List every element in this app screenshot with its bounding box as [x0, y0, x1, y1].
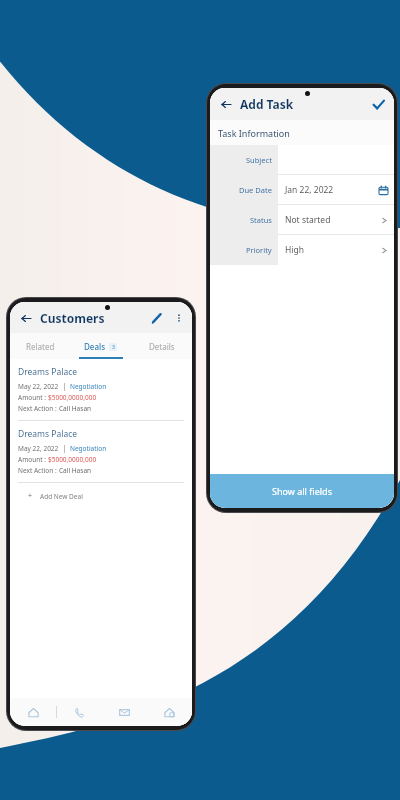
staticText: Dreams Palace [18, 366, 78, 378]
staticText: Show all fields [272, 485, 332, 497]
staticText: Next Action : [18, 466, 59, 475]
button[interactable]: Back [15, 307, 37, 329]
staticText: Negotiation [70, 382, 107, 391]
button[interactable]: Save [367, 93, 389, 115]
button[interactable]: Subject [210, 145, 394, 175]
button[interactable]: Home [10, 698, 56, 726]
staticText: Add Task [240, 96, 294, 112]
button[interactable]: Back [215, 93, 237, 115]
staticText: Priority [246, 245, 272, 255]
staticText: + [28, 491, 33, 501]
staticText: Status [250, 215, 272, 225]
button[interactable]: Dreams Palace [10, 421, 192, 482]
staticText: Call Hasan [59, 404, 92, 413]
staticText: $5000,0000,000 [48, 455, 97, 464]
button[interactable]: More options [170, 309, 188, 327]
staticText: Not started [285, 214, 381, 226]
staticText: Customers [40, 310, 105, 326]
staticText: Amount : [18, 455, 48, 464]
button[interactable]: History [147, 698, 192, 726]
button[interactable]: Call [57, 698, 102, 726]
button[interactable]: + [10, 483, 192, 509]
staticText: Dreams Palace [18, 428, 78, 440]
staticText: Next Action : [18, 404, 59, 413]
staticText: May 22, 2022 [18, 444, 59, 453]
button[interactable]: Due Date [210, 175, 394, 205]
staticText: $5000,0000,000 [48, 393, 97, 402]
button[interactable]: Mail [102, 698, 147, 726]
staticText: Due Date [239, 185, 272, 195]
staticText: Related [26, 341, 55, 352]
staticText: Details [149, 341, 175, 352]
staticText: 3 [112, 344, 115, 351]
staticText: Task Information [218, 127, 290, 139]
button[interactable]: Related [10, 333, 70, 359]
staticText: Call Hasan [59, 466, 92, 475]
staticText: May 22, 2022 [18, 382, 59, 391]
button[interactable]: Show all fields [210, 474, 394, 508]
button[interactable]: Dreams Palace [10, 359, 192, 420]
staticText: Jan 22, 2022 [285, 184, 379, 196]
button[interactable]: Edit [146, 307, 168, 329]
staticText: Add New Deal [40, 492, 83, 501]
button[interactable]: Status [210, 205, 394, 235]
button[interactable]: Deals [70, 333, 131, 359]
staticText: Amount : [18, 393, 48, 402]
staticText: Negotiation [70, 444, 107, 453]
button[interactable]: Details [131, 333, 192, 359]
staticText: High [285, 244, 381, 256]
button[interactable]: Priority [210, 235, 394, 265]
staticText: Deals [84, 341, 106, 352]
staticText: Subject [246, 155, 272, 165]
